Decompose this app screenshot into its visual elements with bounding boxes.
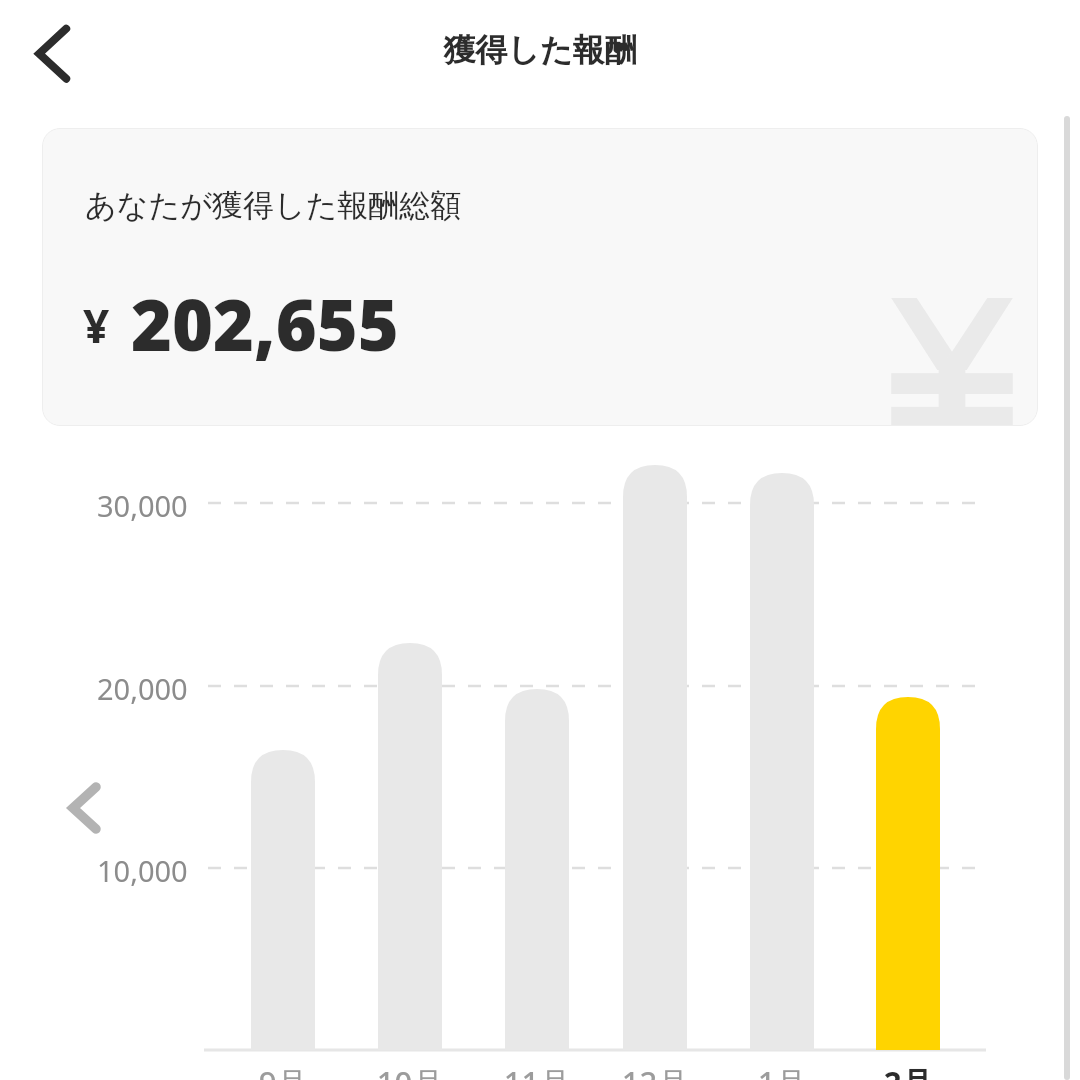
staticText: 獲得した報酬	[0, 30, 1080, 1080]
button[interactable]: Previous months	[48, 770, 108, 846]
staticText: ¥	[83, 294, 110, 357]
button[interactable]: 9月	[228, 1061, 338, 1080]
staticText: 10月	[355, 1061, 465, 1080]
staticText: 1月	[727, 1061, 837, 1080]
staticText: 2月	[853, 1061, 963, 1080]
staticText: 11月	[482, 1061, 592, 1080]
staticText: 30,000	[97, 486, 188, 525]
button[interactable]: 1月	[727, 1061, 837, 1080]
button[interactable]: 11月	[482, 1061, 592, 1080]
button[interactable]: 12月	[600, 1061, 710, 1080]
button[interactable]: Back	[6, 10, 90, 94]
staticText: 9月	[228, 1061, 338, 1080]
staticText: 12月	[600, 1061, 710, 1080]
button[interactable]: あなたが獲得した報酬総額	[42, 128, 1038, 426]
button[interactable]: 10月	[355, 1061, 465, 1080]
staticText: あなたが獲得した報酬総額	[85, 186, 462, 225]
staticText: 20,000	[97, 669, 188, 708]
staticText: 202,655	[131, 276, 399, 371]
button[interactable]: 2月	[853, 1061, 963, 1080]
staticText: 10,000	[97, 851, 188, 890]
